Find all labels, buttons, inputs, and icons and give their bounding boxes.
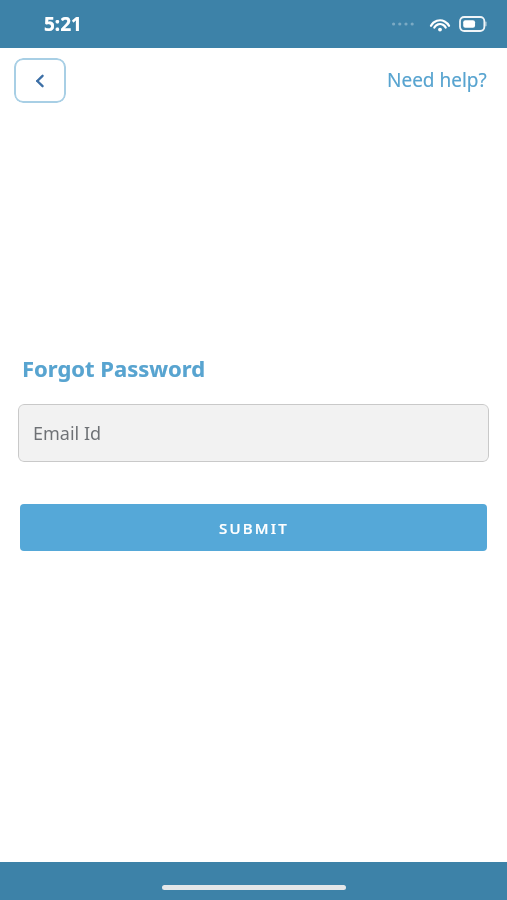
staticText: Forgot Password [22,353,206,383]
button[interactable]: Back [14,58,66,103]
button[interactable]: Need help? [381,61,493,99]
staticText: Email Id [33,421,102,446]
staticText: 5:21 [44,11,82,37]
button[interactable]: SUBMIT [20,504,487,551]
staticText: SUBMIT [219,518,289,538]
staticText: Need help? [387,67,487,93]
button[interactable]: Email Id [18,404,489,462]
